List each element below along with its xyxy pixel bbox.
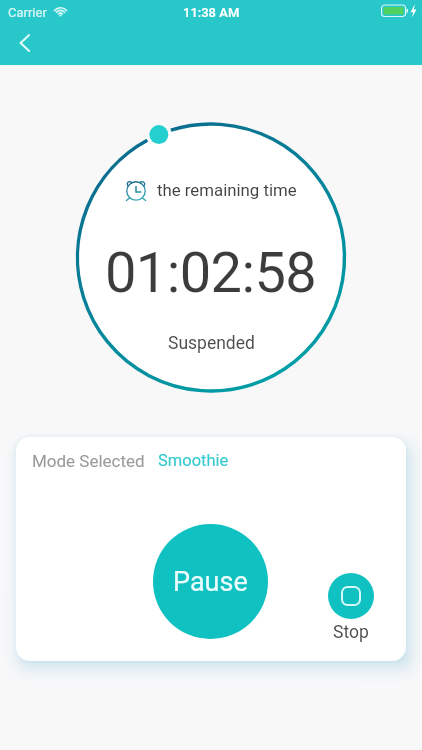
staticText: Carrier [8,5,47,20]
staticText: 01:02:58 [105,240,317,306]
button[interactable]: Back [2,21,46,65]
staticText: Stop [333,622,369,643]
staticText: Pause [173,566,248,598]
button[interactable]: Stop [328,573,374,643]
staticText: Suspended [168,333,255,354]
button[interactable]: Pause [153,524,268,639]
staticText: 11:38 AM [183,5,240,20]
staticText: Smoothie [158,451,229,470]
staticText: Mode Selected [32,451,145,471]
staticText: the remaining time [157,180,297,200]
